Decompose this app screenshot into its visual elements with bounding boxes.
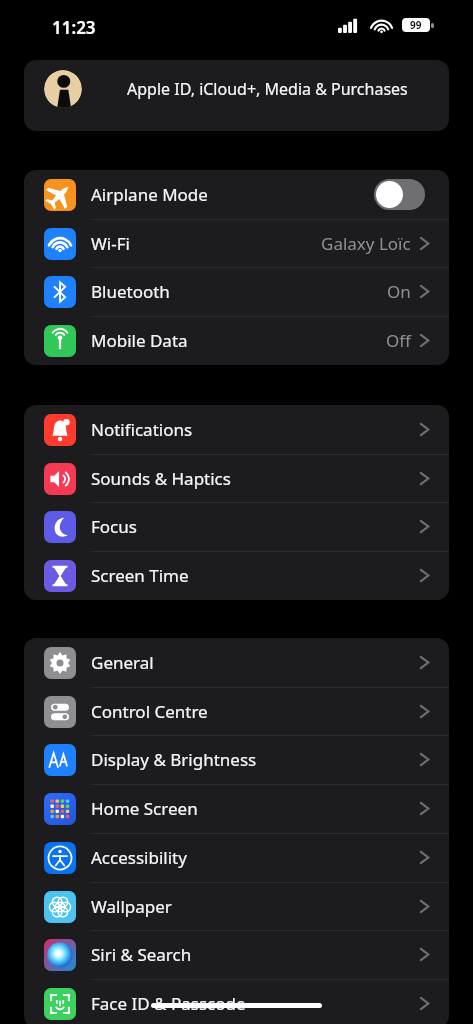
staticText: Sounds & Haptics bbox=[91, 467, 231, 490]
button[interactable]: Mobile Data bbox=[24, 316, 449, 365]
button[interactable]: Face ID & Passcode bbox=[24, 979, 449, 1024]
staticText: Galaxy Loïc bbox=[321, 232, 411, 255]
staticText: Settings bbox=[200, 62, 274, 87]
button[interactable]: Display & Brightness bbox=[24, 735, 449, 784]
button[interactable]: Wallpaper bbox=[24, 882, 449, 931]
button[interactable]: Bluetooth bbox=[24, 267, 449, 316]
button[interactable]: Accessibility bbox=[24, 833, 449, 882]
button[interactable]: Airplane Mode toggle bbox=[374, 179, 425, 210]
staticText: Face ID & Passcode bbox=[91, 992, 246, 1015]
staticText: Notifications bbox=[91, 418, 193, 441]
staticText: Airplane Mode bbox=[91, 183, 208, 206]
staticText: Focus bbox=[91, 515, 137, 538]
button[interactable]: Notifications bbox=[24, 405, 449, 454]
staticText: Apple ID, iCloud+, Media & Purchases bbox=[127, 78, 408, 100]
button[interactable]: Sounds & Haptics bbox=[24, 454, 449, 503]
staticText: Wallpaper bbox=[91, 895, 172, 918]
staticText: Siri & Search bbox=[91, 943, 192, 966]
staticText: Off bbox=[386, 329, 411, 352]
staticText: Screen Time bbox=[91, 564, 189, 587]
staticText: Control Centre bbox=[91, 700, 208, 723]
button[interactable]: General bbox=[24, 638, 449, 687]
button[interactable]: Home Screen bbox=[24, 784, 449, 833]
button[interactable]: Apple ID, iCloud+, Media & Purchases bbox=[24, 60, 449, 131]
button[interactable]: Screen Time bbox=[24, 551, 449, 600]
staticText: Display & Brightness bbox=[91, 748, 257, 771]
staticText: General bbox=[91, 651, 154, 674]
staticText: Wi-Fi bbox=[91, 232, 130, 255]
button[interactable]: Wi-Fi bbox=[24, 219, 449, 268]
button[interactable]: Airplane Mode bbox=[24, 170, 449, 219]
staticText: Bluetooth bbox=[91, 280, 170, 303]
staticText: 99 bbox=[410, 18, 422, 32]
button[interactable]: Focus bbox=[24, 502, 449, 551]
staticText: 11:23 bbox=[52, 16, 96, 39]
staticText: Mobile Data bbox=[91, 329, 188, 352]
button[interactable]: Siri & Search bbox=[24, 930, 449, 979]
staticText: Home Screen bbox=[91, 797, 198, 820]
button[interactable]: Control Centre bbox=[24, 687, 449, 736]
staticText: On bbox=[387, 280, 411, 303]
staticText: Accessibility bbox=[91, 846, 187, 869]
